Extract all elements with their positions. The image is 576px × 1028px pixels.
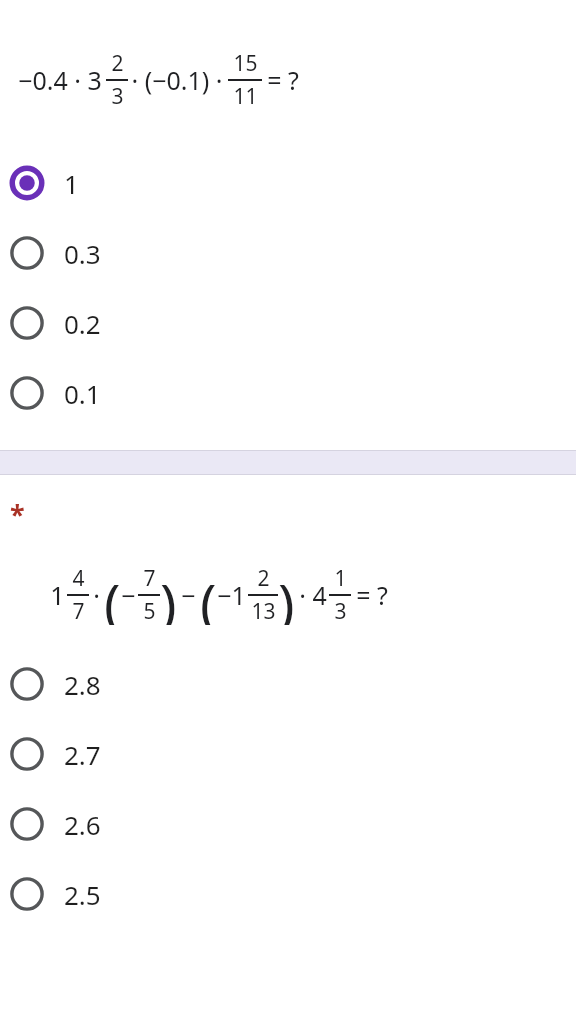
staticText: 11: [233, 82, 258, 111]
button[interactable]: 2.8: [0, 649, 576, 719]
staticText: 3: [111, 82, 124, 111]
staticText: 0.2: [64, 306, 101, 341]
staticText: 2: [257, 564, 270, 593]
button[interactable]: 0.1: [0, 358, 576, 428]
staticText: 4: [72, 564, 85, 593]
button[interactable]: 0.3: [0, 218, 576, 288]
staticText: ): [160, 565, 177, 625]
staticText: *: [10, 496, 25, 533]
staticText: ): [278, 565, 295, 625]
staticText: 2.6: [64, 807, 101, 842]
staticText: 7: [72, 597, 85, 626]
staticText: 15: [233, 49, 258, 78]
staticText: 0.3: [64, 236, 101, 271]
staticText: 1: [334, 564, 347, 593]
staticText: 5: [143, 597, 156, 626]
staticText: 3: [334, 597, 347, 626]
staticText: = ?: [267, 63, 299, 97]
staticText: 7: [143, 564, 156, 593]
staticText: −0.4 · 3: [18, 63, 102, 97]
staticText: 1: [64, 166, 79, 201]
staticText: (: [200, 565, 217, 625]
staticText: −: [121, 578, 136, 612]
staticText: 13: [251, 597, 276, 626]
button[interactable]: 2.6: [0, 789, 576, 859]
staticText: 0.1: [64, 376, 101, 411]
button[interactable]: 0.2: [0, 288, 576, 358]
staticText: 2: [111, 49, 124, 78]
staticText: (: [104, 565, 121, 625]
staticText: 1: [50, 578, 65, 612]
button[interactable]: 2.5: [0, 859, 576, 929]
staticText: 2.5: [64, 877, 101, 912]
staticText: 2.8: [64, 667, 101, 702]
staticText: · 4: [299, 578, 327, 612]
staticText: · (−0.1) ·: [131, 63, 223, 97]
staticText: ·: [93, 578, 100, 612]
button[interactable]: 2.7: [0, 719, 576, 789]
staticText: −1: [217, 578, 246, 612]
button[interactable]: 1: [0, 148, 576, 218]
staticText: 2.7: [64, 737, 101, 772]
staticText: −: [181, 578, 196, 612]
staticText: = ?: [356, 578, 388, 612]
